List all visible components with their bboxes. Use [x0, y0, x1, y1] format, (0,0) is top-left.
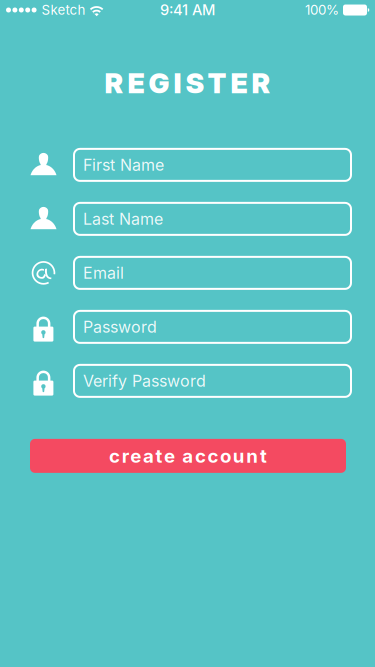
- staticText: Email: [83, 263, 124, 283]
- button[interactable]: Last Name: [74, 203, 351, 235]
- button[interactable]: Email: [74, 257, 351, 289]
- staticText: 9:41 AM: [160, 1, 215, 19]
- staticText: Sketch: [42, 2, 86, 18]
- staticText: create account: [109, 445, 267, 467]
- button[interactable]: Verify Password: [74, 365, 351, 397]
- staticText: 100%: [305, 2, 339, 18]
- staticText: Last Name: [83, 209, 163, 229]
- staticText: Verify Password: [83, 371, 206, 391]
- button[interactable]: First Name: [74, 149, 351, 181]
- staticText: First Name: [83, 155, 164, 175]
- button[interactable]: create account: [30, 439, 346, 473]
- button[interactable]: Password: [74, 311, 351, 343]
- staticText: REGISTER: [104, 66, 270, 100]
- staticText: Password: [83, 317, 157, 337]
